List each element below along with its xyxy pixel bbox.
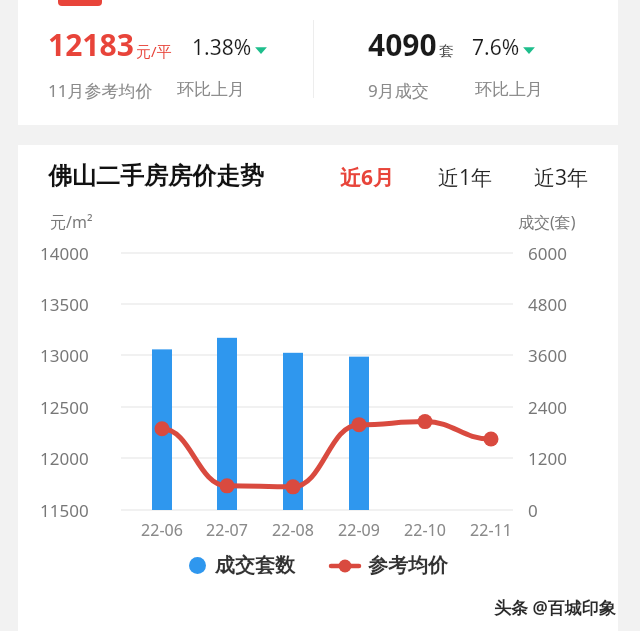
staticText: 佛山二手房房价走势 — [48, 161, 264, 191]
staticText: 环比上月 — [475, 79, 543, 100]
staticText: 2400 — [528, 396, 567, 419]
staticText: 12000 — [40, 447, 89, 470]
staticText: 头条 @百城印象 — [494, 596, 616, 619]
staticText: 近1年 — [438, 163, 493, 192]
staticText: 13000 — [40, 344, 89, 367]
staticText: 元/m² — [50, 211, 93, 233]
button[interactable]: 成交套数 — [189, 553, 295, 578]
staticText: 13500 — [40, 293, 89, 316]
staticText: 3600 — [528, 344, 567, 367]
staticText: 22-08 — [262, 519, 324, 541]
staticText: 套 — [439, 42, 454, 61]
staticText: 成交(套) — [518, 211, 576, 233]
staticText: 9月成交 — [368, 79, 429, 102]
staticText: 4800 — [528, 293, 567, 316]
staticText: 22-09 — [328, 519, 390, 541]
staticText: 6000 — [528, 242, 567, 265]
staticText: 参考均价 — [368, 553, 448, 578]
staticText: 22-06 — [131, 519, 193, 541]
staticText: 0 — [528, 499, 538, 522]
staticText: 1200 — [528, 447, 567, 470]
staticText: 元/平 — [136, 41, 172, 61]
button[interactable]: 近6月 — [336, 159, 399, 196]
staticText: 22-11 — [460, 519, 522, 541]
staticText: 22-07 — [196, 519, 258, 541]
staticText: 14000 — [40, 242, 89, 265]
button[interactable] — [58, 0, 102, 6]
button[interactable]: 近1年 — [434, 159, 497, 196]
staticText: 近3年 — [534, 163, 589, 192]
staticText: 12183 — [48, 24, 134, 65]
button[interactable]: 参考均价 — [331, 553, 448, 578]
button[interactable]: 近3年 — [530, 159, 593, 196]
staticText: 11500 — [40, 499, 89, 522]
staticText: 4090 — [368, 24, 437, 65]
staticText: 1.38% — [192, 33, 252, 62]
staticText: 22-10 — [394, 519, 456, 541]
staticText: 环比上月 — [177, 79, 245, 100]
staticText: 11月参考均价 — [48, 79, 153, 102]
staticText: 12500 — [40, 396, 89, 419]
staticText: 成交套数 — [215, 553, 295, 578]
staticText: 近6月 — [340, 163, 395, 192]
staticText: 7.6% — [472, 33, 520, 62]
